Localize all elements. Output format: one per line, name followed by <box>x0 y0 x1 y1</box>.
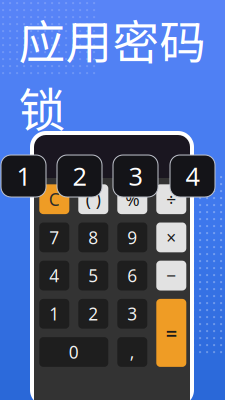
button[interactable]: 1 <box>1 155 46 197</box>
staticText: % <box>125 188 139 211</box>
button[interactable]: × <box>156 222 186 252</box>
button[interactable]: − <box>156 261 186 290</box>
staticText: , <box>130 340 135 363</box>
staticText: 5 <box>88 264 98 287</box>
staticText: 2 <box>88 302 98 325</box>
button[interactable]: , <box>117 337 147 367</box>
button[interactable]: = <box>156 299 186 367</box>
button[interactable]: 2 <box>57 155 102 197</box>
button[interactable]: 4 <box>170 155 215 197</box>
staticText: 1 <box>49 302 59 325</box>
button[interactable]: 3 <box>113 155 158 197</box>
button[interactable]: 6 <box>117 261 147 290</box>
button[interactable]: 9 <box>117 222 147 252</box>
staticText: ( ) <box>86 188 101 211</box>
staticText: 6 <box>127 264 137 287</box>
staticText: 1 <box>16 159 30 193</box>
staticText: − <box>166 264 176 287</box>
staticText: = <box>166 320 177 346</box>
button[interactable]: 7 <box>39 222 69 252</box>
staticText: 4 <box>49 264 59 287</box>
staticText: 应用密码锁 <box>18 5 206 140</box>
button[interactable]: 4 <box>39 261 69 290</box>
staticText: ÷ <box>166 188 176 211</box>
staticText: 0 <box>69 340 79 363</box>
button[interactable]: 0 <box>39 337 108 367</box>
staticText: 4 <box>185 159 199 193</box>
staticText: 9 <box>127 226 137 249</box>
staticText: 7 <box>49 226 59 249</box>
button[interactable]: ÷ <box>156 184 186 214</box>
button[interactable]: ( ) <box>78 184 108 214</box>
button[interactable]: 2 <box>78 299 108 329</box>
button[interactable]: 8 <box>78 222 108 252</box>
staticText: 8 <box>88 226 98 249</box>
button[interactable]: C <box>39 184 69 214</box>
staticText: 3 <box>128 159 142 193</box>
staticText: × <box>166 226 176 249</box>
button[interactable]: 3 <box>117 299 147 329</box>
button[interactable]: 5 <box>78 261 108 290</box>
staticText: C <box>49 188 60 211</box>
staticText: 3 <box>127 302 137 325</box>
button[interactable]: 1 <box>39 299 69 329</box>
staticText: 2 <box>72 159 86 193</box>
button[interactable]: % <box>117 184 147 214</box>
